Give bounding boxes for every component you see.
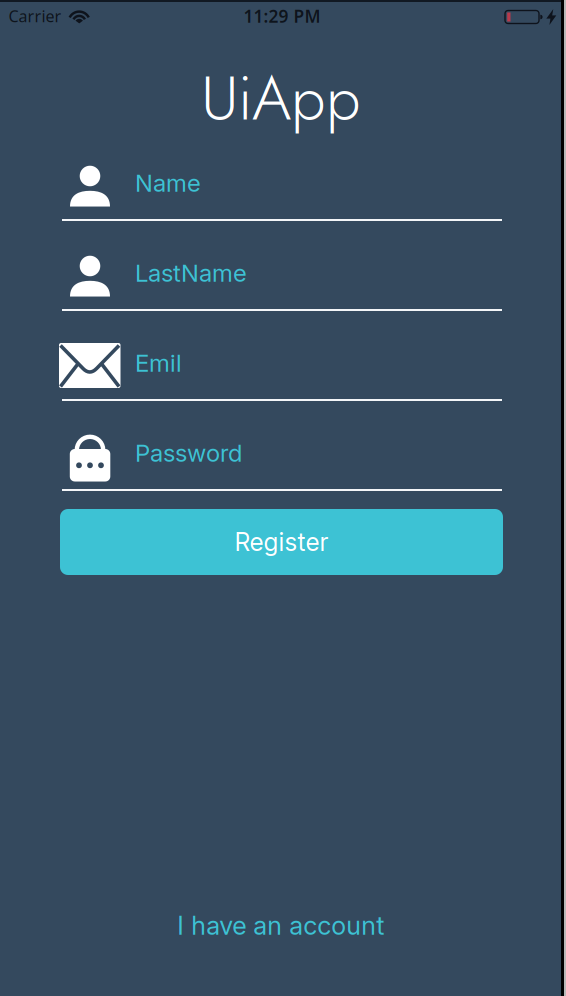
staticText: Register xyxy=(234,527,328,557)
button[interactable]: Emil xyxy=(60,338,502,401)
button[interactable]: Name xyxy=(60,158,502,221)
button[interactable]: Password xyxy=(60,428,502,491)
staticText: Password xyxy=(135,439,242,468)
staticText: Carrier xyxy=(8,5,61,27)
staticText: UiApp xyxy=(201,53,361,143)
button[interactable]: Register xyxy=(60,509,503,575)
staticText: LastName xyxy=(135,259,247,288)
staticText: Emil xyxy=(135,349,182,378)
staticText: 11:29 PM xyxy=(243,4,320,27)
staticText: I have an account xyxy=(177,910,384,941)
button[interactable]: I have an account xyxy=(177,910,384,941)
staticText: Name xyxy=(135,169,201,198)
button[interactable]: LastName xyxy=(60,248,502,311)
